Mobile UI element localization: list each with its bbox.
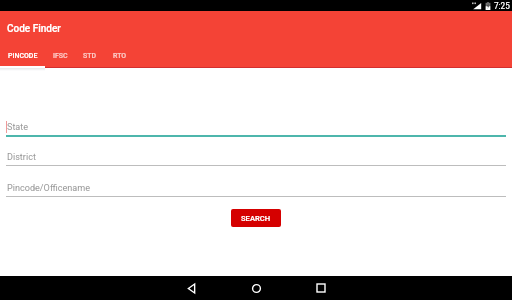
staticText: 7:25 — [494, 1, 510, 11]
button[interactable]: Home — [236, 276, 276, 300]
staticText: PINCODE — [8, 52, 38, 60]
button[interactable]: STD — [75, 45, 105, 67]
staticText: Code Finder — [7, 23, 61, 35]
staticText: SEARCH — [241, 214, 271, 223]
button[interactable]: IFSC — [45, 45, 75, 67]
button[interactable]: Recents — [301, 276, 341, 300]
button[interactable]: RTO — [105, 45, 135, 67]
button[interactable]: SEARCH — [231, 209, 281, 227]
button[interactable]: State — [6, 118, 506, 137]
staticText: District — [7, 152, 36, 163]
staticText: RTO — [113, 52, 127, 60]
staticText: STD — [83, 52, 97, 60]
staticText: IFSC — [53, 52, 68, 60]
button[interactable]: Pincode/Officename — [6, 179, 506, 197]
staticText: Pincode/Officename — [7, 183, 90, 194]
button[interactable]: District — [6, 148, 506, 166]
button[interactable]: Back — [171, 276, 211, 300]
button[interactable]: PINCODE — [0, 45, 45, 67]
staticText: State — [7, 122, 29, 133]
